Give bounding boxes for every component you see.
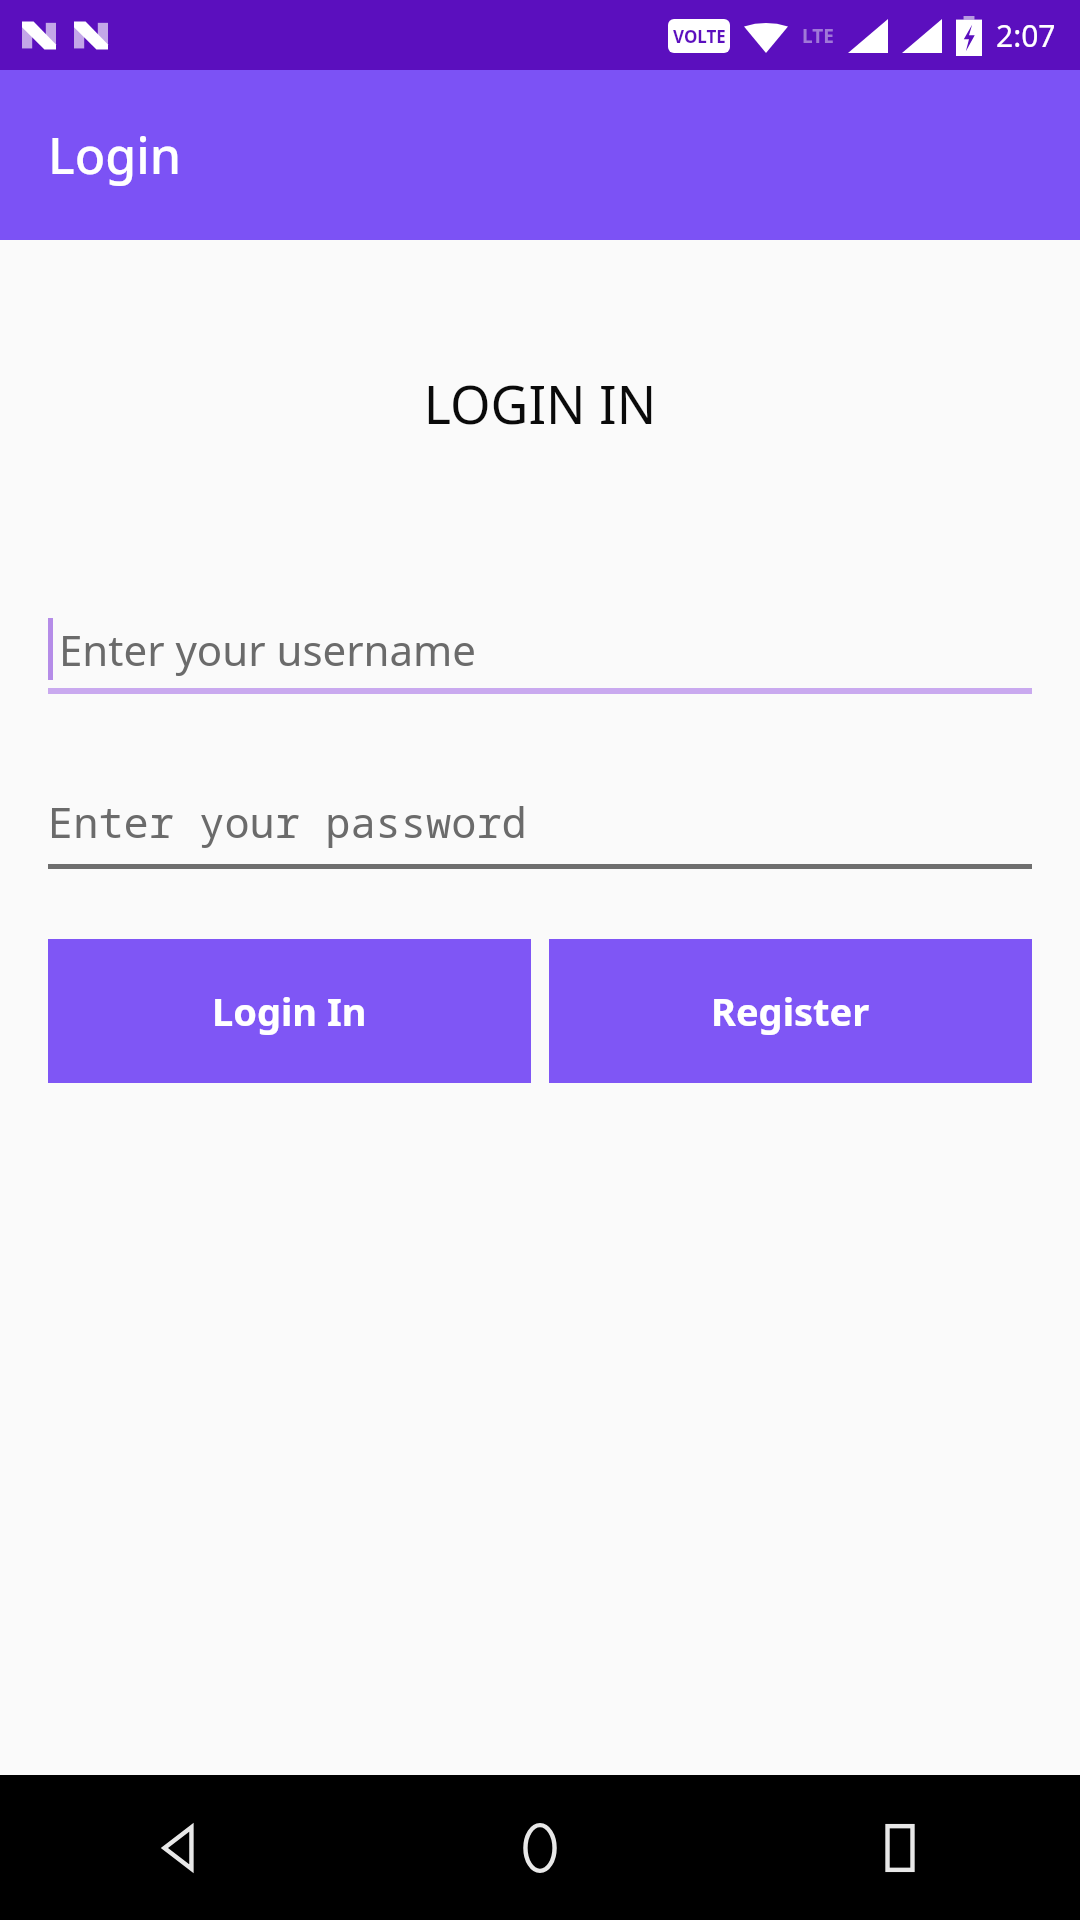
staticText: Enter your password xyxy=(48,793,527,850)
staticText: Register xyxy=(711,985,870,1037)
staticText: Enter your username xyxy=(59,621,477,678)
staticText: 2:07 xyxy=(996,15,1056,56)
button[interactable]: Recent apps xyxy=(720,1775,1080,1920)
staticText: LOGIN IN xyxy=(0,368,1080,439)
staticText: VOLTE xyxy=(673,25,726,48)
staticText: Login xyxy=(48,121,182,189)
button[interactable]: Login In xyxy=(48,939,531,1083)
staticText: LTE xyxy=(802,23,834,49)
staticText: Login In xyxy=(212,985,367,1037)
button[interactable]: Enter your username xyxy=(48,604,1032,694)
button[interactable]: Enter your password xyxy=(48,779,1032,869)
button[interactable]: Home xyxy=(360,1775,720,1920)
button[interactable]: Back xyxy=(0,1775,360,1920)
button[interactable]: Register xyxy=(549,939,1032,1083)
